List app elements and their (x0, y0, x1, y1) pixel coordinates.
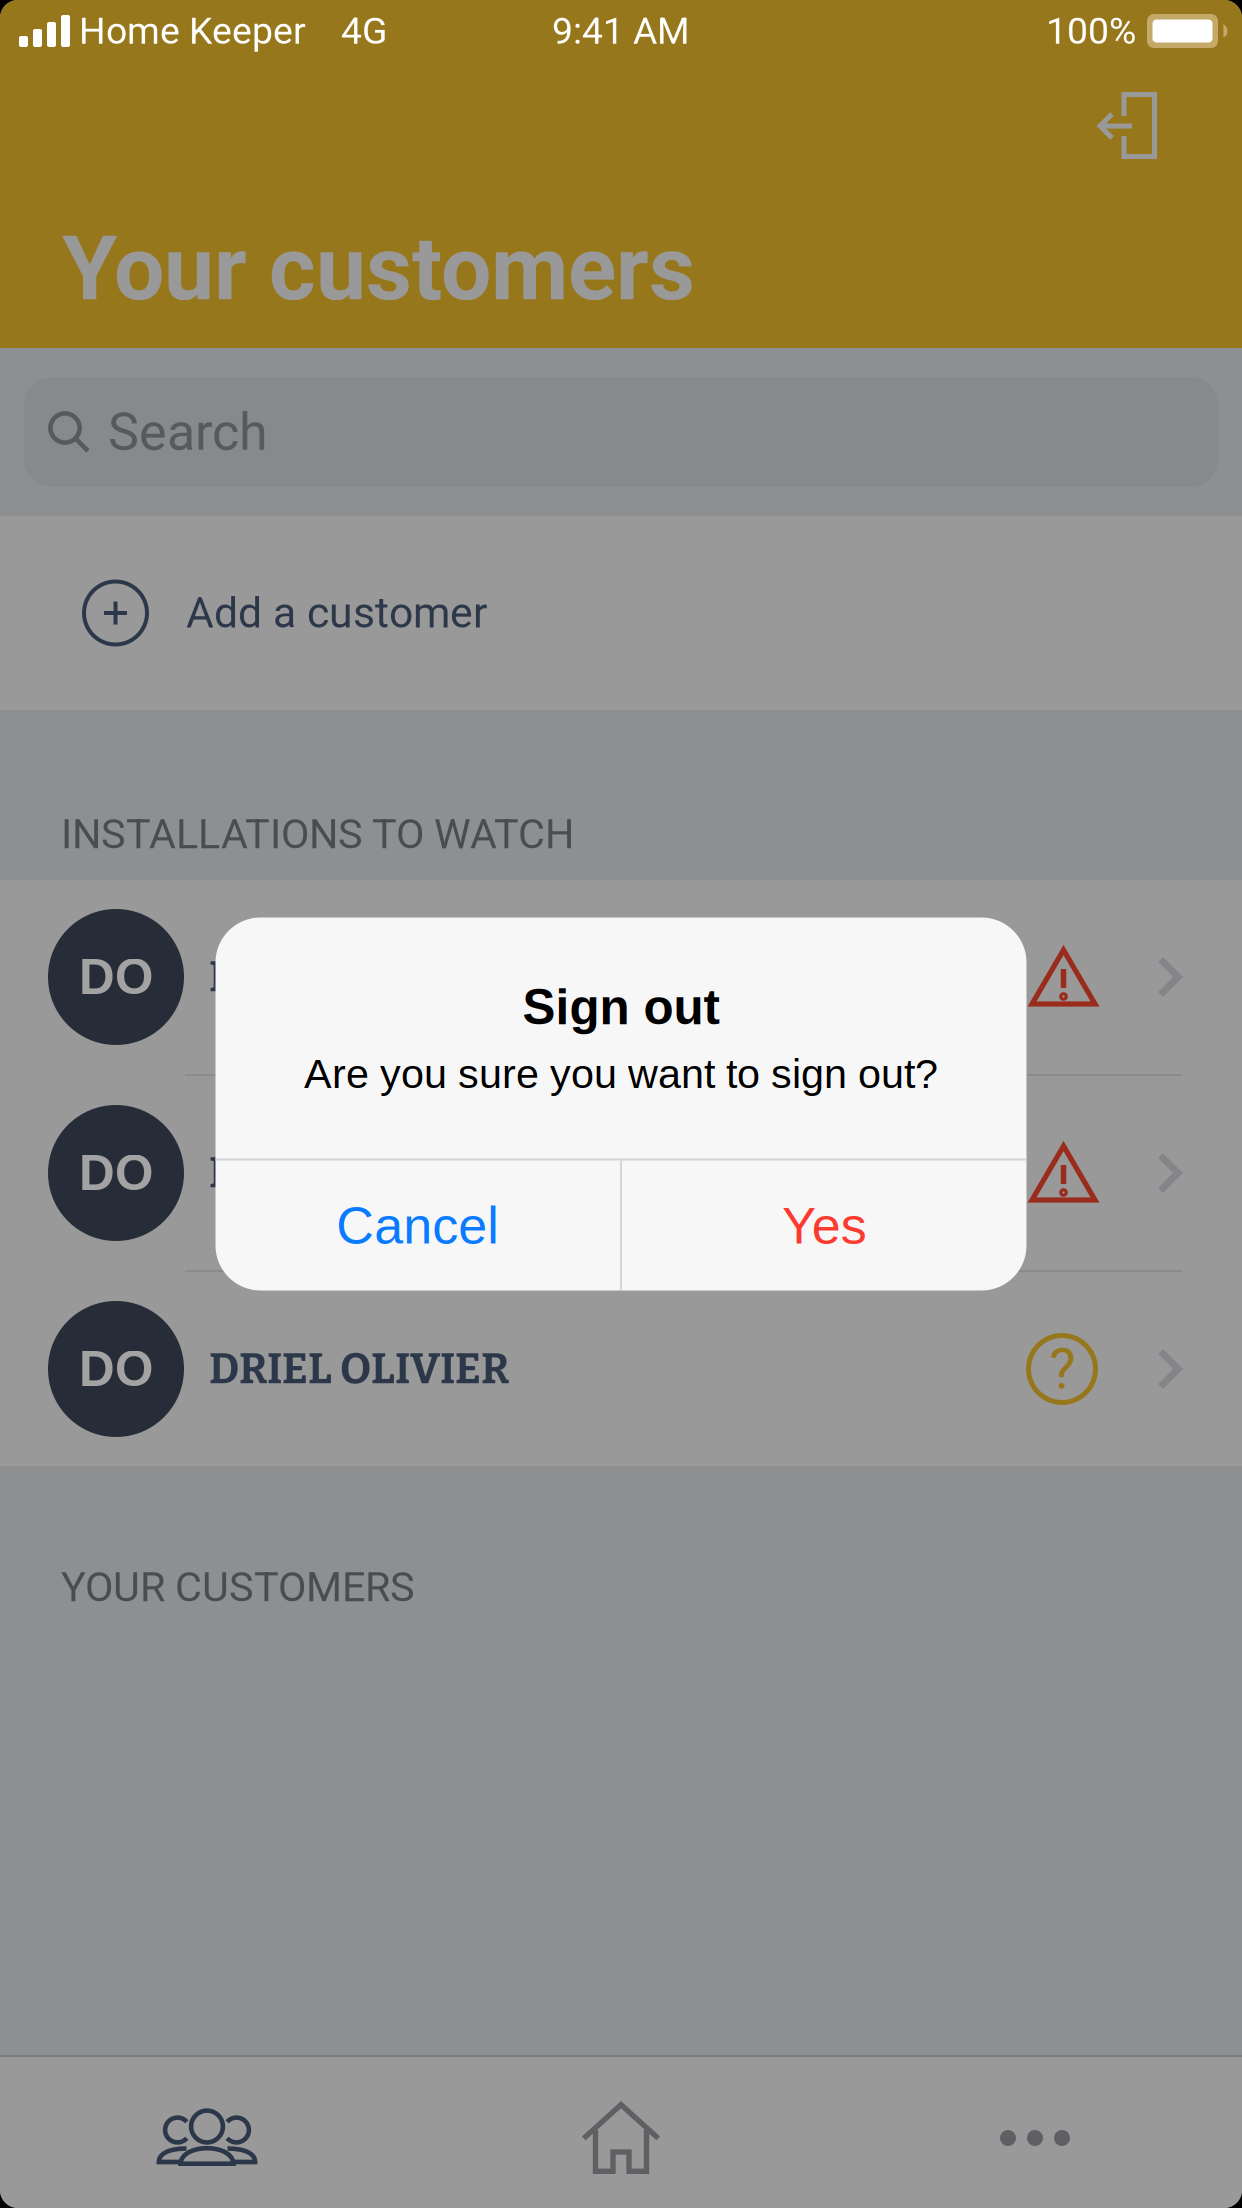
staticText: 4G (341, 9, 387, 53)
button[interactable]: Customers (0, 2057, 414, 2208)
button[interactable]: Yes (622, 1160, 1026, 1290)
staticText: Search (108, 401, 268, 462)
staticText: DRIEL OLIVIER (209, 951, 509, 1003)
button[interactable]: Cancel (215, 1160, 620, 1290)
button[interactable]: DO (0, 880, 1242, 1074)
staticText: DRIEL OLIVIER (209, 1147, 509, 1199)
staticText: Add a customer (186, 588, 487, 638)
staticText: DO (79, 1145, 153, 1200)
staticText: 100% (1046, 9, 1136, 53)
staticText: Your customers (62, 216, 695, 321)
button[interactable]: DO (0, 1076, 1242, 1270)
staticText: Are you sure you want to sign out? (304, 1051, 938, 1097)
staticText: DO (79, 949, 153, 1004)
staticText: 9:41 AM (552, 9, 690, 53)
button[interactable]: DO (0, 1272, 1242, 1466)
button[interactable]: Home (414, 2057, 828, 2208)
staticText: DRIEL OLIVIER (209, 1343, 509, 1395)
button[interactable]: More (828, 2057, 1242, 2208)
staticText: Yes (782, 1196, 867, 1255)
staticText: YOUR CUSTOMERS (61, 1563, 415, 1611)
button[interactable]: Search (24, 377, 1218, 487)
button[interactable]: Sign out (1081, 76, 1173, 175)
staticText: Sign out (522, 979, 719, 1035)
staticText: Home Keeper (79, 9, 306, 53)
staticText: ? (1049, 1336, 1075, 1402)
button[interactable]: Add a customer (0, 516, 1242, 710)
staticText: Cancel (336, 1196, 499, 1255)
staticText: DO (79, 1341, 153, 1396)
staticText: INSTALLATIONS TO WATCH (61, 810, 574, 858)
